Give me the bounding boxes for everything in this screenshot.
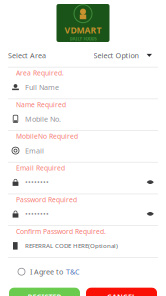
staticText: Select Option <box>93 51 138 60</box>
staticText: DAILY FOODS <box>69 36 96 42</box>
staticText: Email Required <box>16 163 65 172</box>
button[interactable]: REFERRAL CODE HERE(Optional) <box>0 240 166 258</box>
button[interactable]: CANCEL <box>86 288 157 296</box>
staticText: Select Area <box>8 51 46 60</box>
staticText: VDMART <box>64 24 101 36</box>
staticText: Name Required <box>16 100 66 109</box>
staticText: Password Required <box>16 195 77 204</box>
button[interactable]: Mobile No. <box>0 113 166 131</box>
staticText: Confirm Password Required. <box>16 227 106 236</box>
button[interactable]: Full Name <box>0 82 166 99</box>
button[interactable]: •••••••• <box>0 177 166 194</box>
staticText: REFERRAL CODE HERE(Optional) <box>25 241 118 250</box>
staticText: •••••••• <box>25 177 49 187</box>
staticText: I Agree to <box>30 267 63 277</box>
staticText: Full Name <box>25 82 59 92</box>
staticText: REGISTER <box>27 292 61 296</box>
staticText: MobileNo Required <box>16 132 78 141</box>
button[interactable]: I Agree to <box>0 268 166 276</box>
staticText: Area Required. <box>16 68 64 77</box>
staticText: Mobile No. <box>25 114 61 124</box>
button[interactable]: •••••••• <box>0 208 166 226</box>
button[interactable]: Email <box>0 145 166 163</box>
staticText: •••••••• <box>25 209 49 219</box>
staticText: CANCEL <box>107 292 136 296</box>
button[interactable]: Select Area <box>0 50 166 67</box>
staticText: T&C <box>66 267 80 277</box>
button[interactable]: REGISTER <box>9 288 80 296</box>
staticText: Email <box>25 146 44 155</box>
